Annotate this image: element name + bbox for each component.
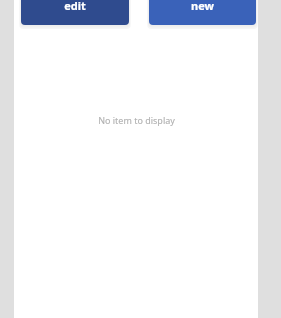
button[interactable]: edit bbox=[21, 0, 129, 25]
staticText: edit bbox=[64, 0, 86, 13]
staticText: No item to display bbox=[98, 114, 175, 126]
button[interactable]: new bbox=[149, 0, 256, 25]
staticText: new bbox=[191, 0, 214, 13]
